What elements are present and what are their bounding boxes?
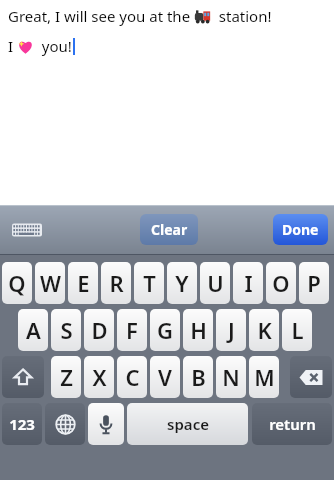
staticText: M xyxy=(254,362,275,392)
staticText: F xyxy=(126,315,138,345)
button[interactable]: D xyxy=(84,309,114,351)
button[interactable]: G xyxy=(150,309,180,351)
staticText: Y xyxy=(175,268,189,298)
staticText: C xyxy=(125,362,140,392)
button[interactable]: U xyxy=(200,262,230,304)
staticText: Done xyxy=(282,220,319,239)
button[interactable]: space xyxy=(127,403,248,445)
staticText: R xyxy=(109,268,124,298)
staticText: Z xyxy=(60,362,73,392)
staticText: Great, I will see you at the xyxy=(8,6,194,26)
button[interactable]: X xyxy=(84,356,114,398)
staticText: V xyxy=(158,362,172,392)
staticText: D xyxy=(91,315,108,345)
button[interactable]: R xyxy=(101,262,131,304)
button[interactable]: Q xyxy=(2,262,32,304)
button[interactable]: M xyxy=(249,356,279,398)
button[interactable]: return xyxy=(252,403,332,445)
button[interactable]: P xyxy=(299,262,329,304)
staticText: J xyxy=(228,315,235,345)
staticText: B xyxy=(191,362,206,392)
staticText: U xyxy=(207,268,224,298)
button[interactable]: S xyxy=(51,309,81,351)
button[interactable]: Change language xyxy=(45,403,85,445)
staticText: L xyxy=(291,315,304,345)
button[interactable]: Hide keyboard xyxy=(10,218,44,242)
staticText: T xyxy=(143,268,156,298)
button[interactable]: W xyxy=(35,262,65,304)
button[interactable]: Done xyxy=(273,214,328,245)
button[interactable]: I xyxy=(233,262,263,304)
button[interactable]: Clear xyxy=(140,214,198,245)
button[interactable]: E xyxy=(68,262,98,304)
button[interactable]: F xyxy=(117,309,147,351)
staticText: W xyxy=(40,268,61,298)
button[interactable]: Z xyxy=(51,356,81,398)
staticText: P xyxy=(307,268,321,298)
staticText: E xyxy=(77,268,90,298)
button[interactable]: B xyxy=(183,356,213,398)
button[interactable]: O xyxy=(266,262,296,304)
staticText: station! xyxy=(211,6,272,26)
staticText: space xyxy=(167,414,209,434)
button[interactable]: J xyxy=(216,309,246,351)
button[interactable]: K xyxy=(249,309,279,351)
staticText: H xyxy=(190,315,207,345)
staticText: return xyxy=(269,414,316,434)
button[interactable]: H xyxy=(183,309,213,351)
button[interactable]: Y xyxy=(167,262,197,304)
staticText: you! xyxy=(34,36,72,56)
staticText: K xyxy=(257,315,272,345)
button[interactable]: V xyxy=(150,356,180,398)
staticText: I xyxy=(8,36,17,56)
button[interactable]: L xyxy=(282,309,312,351)
button[interactable]: N xyxy=(216,356,246,398)
staticText: N xyxy=(222,362,240,392)
button[interactable]: Backspace xyxy=(290,356,332,398)
staticText: X xyxy=(92,362,107,392)
staticText: Q xyxy=(8,268,26,298)
staticText: 123 xyxy=(9,414,35,434)
button[interactable]: A xyxy=(18,309,48,351)
staticText: G xyxy=(157,315,173,345)
button[interactable]: 123 xyxy=(2,403,42,445)
button[interactable]: T xyxy=(134,262,164,304)
staticText: I xyxy=(244,268,253,298)
button[interactable]: C xyxy=(117,356,147,398)
staticText: Clear xyxy=(151,220,188,239)
staticText: A xyxy=(26,315,41,345)
button[interactable]: Dictate xyxy=(88,403,124,445)
staticText: O xyxy=(272,268,290,298)
button[interactable]: Shift xyxy=(2,356,44,398)
staticText: S xyxy=(60,315,73,345)
